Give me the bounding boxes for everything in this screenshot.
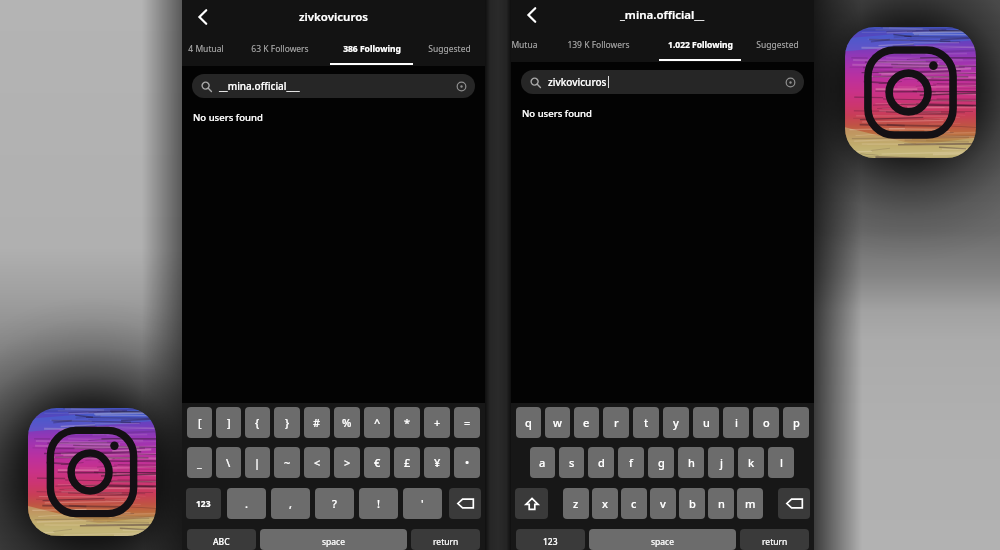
- button[interactable]: space: [589, 529, 736, 550]
- button[interactable]: €: [364, 447, 390, 478]
- button[interactable]: +: [424, 407, 450, 438]
- button[interactable]: 386 Following: [330, 34, 413, 66]
- button[interactable]: \: [216, 447, 241, 478]
- staticText: o: [763, 415, 770, 430]
- staticText: Suggested: [428, 43, 471, 55]
- button[interactable]: ABC: [187, 529, 256, 550]
- staticText: ': [421, 496, 424, 511]
- button[interactable]: =: [454, 407, 480, 438]
- button[interactable]: Suggested: [741, 30, 814, 62]
- staticText: .: [245, 496, 248, 511]
- button[interactable]: return: [411, 529, 480, 550]
- button[interactable]: ]: [216, 407, 241, 438]
- staticText: _: [197, 455, 202, 470]
- button[interactable]: k: [738, 447, 764, 478]
- button[interactable]: ?: [315, 488, 354, 519]
- button[interactable]: .: [227, 488, 266, 519]
- button[interactable]: !: [359, 488, 398, 519]
- button[interactable]: g: [648, 447, 674, 478]
- button[interactable]: j: [708, 447, 734, 478]
- button[interactable]: b: [679, 488, 705, 519]
- button[interactable]: <: [304, 447, 330, 478]
- button[interactable]: 4 Mutual: [182, 34, 230, 66]
- button[interactable]: Backspace: [778, 488, 810, 519]
- button[interactable]: ^: [364, 407, 390, 438]
- button[interactable]: z: [563, 488, 589, 519]
- button[interactable]: v: [650, 488, 676, 519]
- button[interactable]: r: [603, 407, 629, 438]
- button[interactable]: y: [663, 407, 689, 438]
- button[interactable]: •: [454, 447, 480, 478]
- staticText: h: [688, 455, 695, 470]
- button[interactable]: Back: [519, 2, 545, 28]
- button[interactable]: d: [588, 447, 614, 478]
- button[interactable]: c: [621, 488, 647, 519]
- button[interactable]: h: [678, 447, 704, 478]
- button[interactable]: t: [633, 407, 659, 438]
- staticText: b: [689, 496, 696, 511]
- button[interactable]: w: [545, 407, 570, 438]
- staticText: t: [644, 415, 649, 430]
- staticText: r: [614, 415, 619, 430]
- staticText: _mina.official__: [620, 7, 705, 23]
- staticText: s: [569, 455, 575, 470]
- button[interactable]: }: [274, 407, 300, 438]
- button[interactable]: zivkovicuros: [521, 70, 804, 94]
- staticText: w: [553, 415, 562, 430]
- button[interactable]: _: [187, 447, 212, 478]
- button[interactable]: p: [783, 407, 809, 438]
- staticText: return: [762, 536, 788, 548]
- staticText: 4 Mutual: [188, 43, 224, 55]
- button[interactable]: Suggested: [413, 34, 485, 66]
- staticText: •: [465, 455, 470, 470]
- staticText: ~: [284, 455, 291, 470]
- button[interactable]: >: [334, 447, 360, 478]
- button[interactable]: l: [768, 447, 794, 478]
- button[interactable]: %: [334, 407, 360, 438]
- button[interactable]: ,: [271, 488, 310, 519]
- button[interactable]: s: [559, 447, 584, 478]
- button[interactable]: Mutual: [511, 30, 537, 62]
- button[interactable]: o: [753, 407, 779, 438]
- button[interactable]: __mina.official___: [192, 74, 475, 98]
- button[interactable]: 1.022 Following: [659, 30, 741, 62]
- button[interactable]: £: [394, 447, 420, 478]
- button[interactable]: 63 K Followers: [230, 34, 330, 66]
- button[interactable]: q: [516, 407, 541, 438]
- button[interactable]: x: [592, 488, 618, 519]
- staticText: {: [255, 415, 260, 430]
- button[interactable]: return: [740, 529, 809, 550]
- button[interactable]: #: [304, 407, 330, 438]
- button[interactable]: 139 K Followers: [537, 30, 659, 62]
- button[interactable]: ': [403, 488, 442, 519]
- button[interactable]: a: [530, 447, 555, 478]
- button[interactable]: Back: [190, 4, 216, 30]
- button[interactable]: ~: [274, 447, 300, 478]
- button[interactable]: 123: [186, 488, 221, 519]
- button[interactable]: f: [618, 447, 644, 478]
- button[interactable]: ¥: [424, 447, 450, 478]
- button[interactable]: u: [693, 407, 719, 438]
- button[interactable]: *: [394, 407, 420, 438]
- staticText: %: [342, 415, 352, 430]
- button[interactable]: {: [245, 407, 270, 438]
- button[interactable]: space: [260, 529, 407, 550]
- staticText: ^: [374, 415, 381, 430]
- staticText: z: [573, 496, 579, 511]
- staticText: d: [598, 455, 605, 470]
- staticText: 123: [196, 498, 211, 510]
- button[interactable]: e: [574, 407, 599, 438]
- button[interactable]: |: [245, 447, 270, 478]
- button[interactable]: Backspace: [449, 488, 481, 519]
- staticText: u: [703, 415, 710, 430]
- button[interactable]: 123: [516, 529, 585, 550]
- staticText: e: [583, 415, 590, 430]
- button[interactable]: m: [737, 488, 763, 519]
- button[interactable]: i: [723, 407, 749, 438]
- button[interactable]: n: [708, 488, 734, 519]
- staticText: ¥: [434, 455, 441, 470]
- staticText: 123: [543, 536, 558, 548]
- button[interactable]: Shift: [515, 488, 548, 519]
- staticText: i: [735, 415, 738, 430]
- button[interactable]: [: [187, 407, 212, 438]
